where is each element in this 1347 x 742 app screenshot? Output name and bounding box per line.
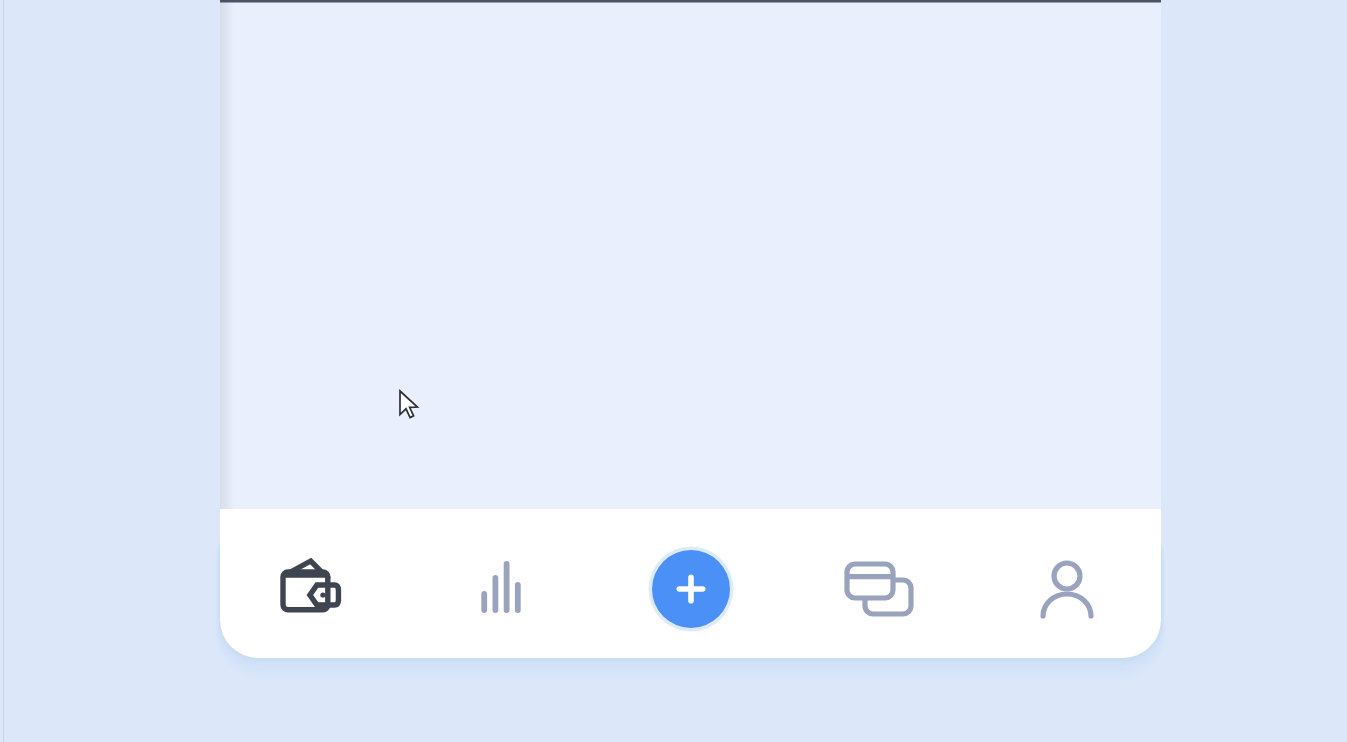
button[interactable]: Wallet [220, 515, 409, 658]
button[interactable]: Statistics [409, 515, 597, 658]
button[interactable]: Profile [973, 515, 1161, 658]
button[interactable]: Cards [785, 515, 973, 658]
button[interactable]: Add transaction [597, 515, 785, 658]
